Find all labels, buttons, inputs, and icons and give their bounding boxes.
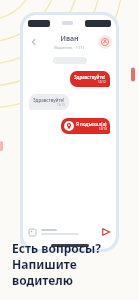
- button[interactable]: Back: [27, 35, 41, 49]
- button[interactable]: Здравствуйте!: [70, 71, 110, 87]
- staticText: Здравствуйте!: [74, 74, 106, 80]
- staticText: 14:12: [98, 80, 106, 84]
- button[interactable]: Profile: [98, 35, 112, 49]
- staticText: Здравствуйте!: [33, 97, 65, 103]
- button[interactable]: Здравствуйте!: [29, 94, 69, 110]
- button[interactable]: Send: [101, 227, 111, 237]
- staticText: Иван: [60, 34, 79, 44]
- button[interactable]: Attach: [28, 228, 37, 237]
- button[interactable]: Я подъехал(а): [61, 118, 110, 134]
- staticText: Я подъехал(а): [76, 121, 107, 127]
- staticText: Напишите водителю: [12, 256, 131, 288]
- staticText: Есть вопросы?: [12, 240, 102, 256]
- staticText: Водитель · 1111: [54, 45, 85, 50]
- staticText: 14:13: [57, 103, 65, 107]
- staticText: 14:14: [99, 127, 107, 131]
